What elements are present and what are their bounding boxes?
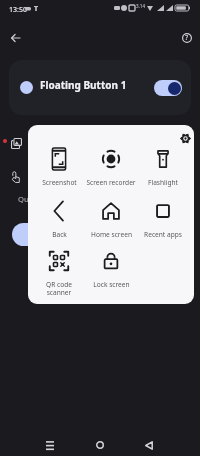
button[interactable]: Back xyxy=(29,200,89,239)
staticText: Quick xyxy=(18,194,39,204)
staticText: ? xyxy=(185,33,189,43)
button[interactable]: Screenshot xyxy=(29,148,89,187)
staticText: Lock screen xyxy=(93,280,130,289)
button[interactable]: Settings xyxy=(175,128,194,148)
button[interactable]: Floating Button 1 xyxy=(9,60,191,115)
button[interactable]: Screen recorder xyxy=(81,148,141,187)
button[interactable]: Menu xyxy=(36,431,64,456)
button[interactable]: Back xyxy=(135,431,163,456)
button[interactable]: Help xyxy=(176,27,197,48)
staticText: Floating Button 1 xyxy=(40,78,127,92)
staticText: Screen recorder xyxy=(86,178,136,187)
staticText: 13:50 xyxy=(9,5,27,15)
staticText: Back xyxy=(52,230,67,239)
button[interactable]: Back xyxy=(5,27,26,48)
button[interactable]: Lock screen xyxy=(81,250,141,289)
staticText: 3.14 xyxy=(136,3,146,9)
button[interactable]: Home screen xyxy=(81,200,141,239)
button[interactable]: QR code scanner xyxy=(29,250,89,297)
button[interactable]: Toggle Floating Button 1 xyxy=(154,80,182,96)
button[interactable]: Recent apps xyxy=(133,200,193,239)
staticText: Screenshot xyxy=(42,178,77,187)
button[interactable]: Home xyxy=(86,431,114,456)
staticText: Recent apps xyxy=(144,230,182,239)
button[interactable]: Flashlight xyxy=(133,148,193,187)
staticText: Home screen xyxy=(91,230,132,239)
staticText: QR code scanner xyxy=(46,280,72,297)
staticText: Flashlight xyxy=(148,178,178,187)
